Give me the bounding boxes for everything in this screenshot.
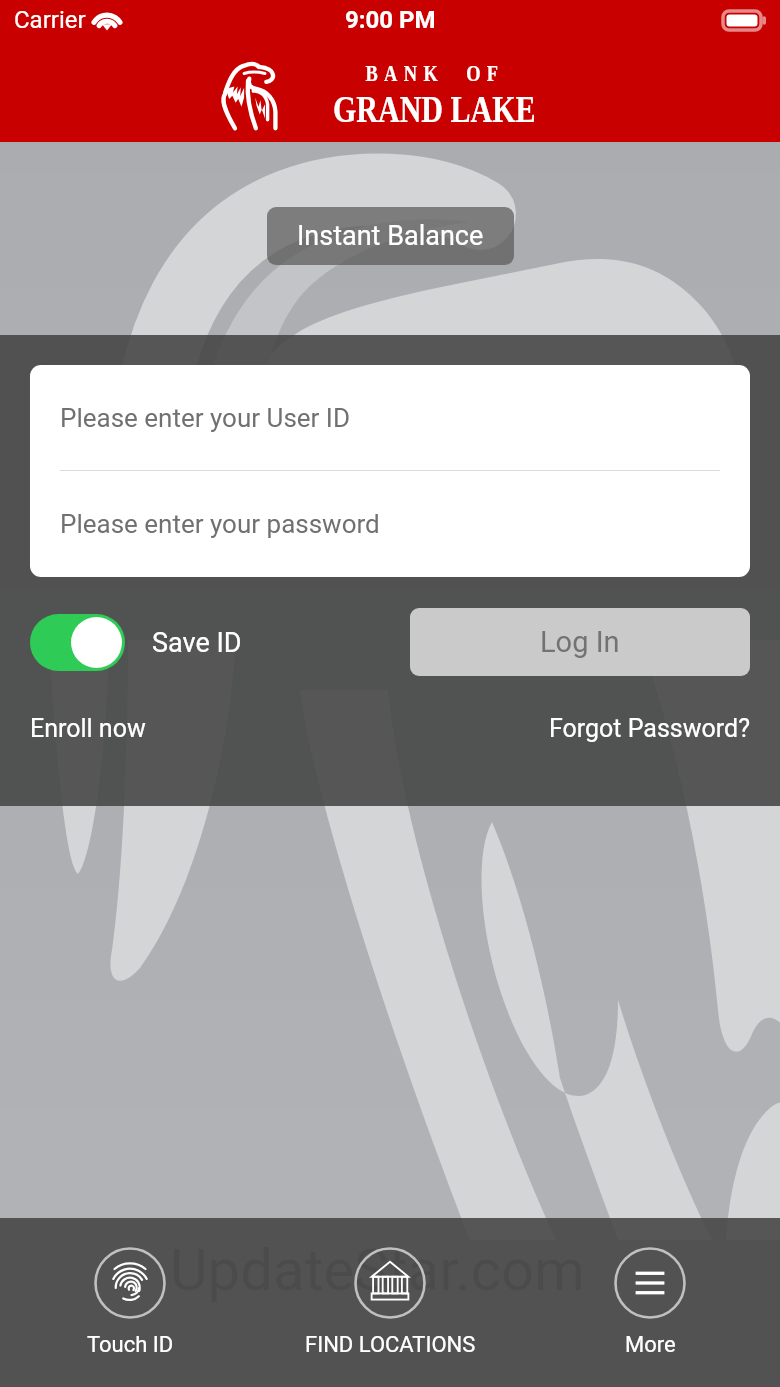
button[interactable]: Log In xyxy=(410,608,750,676)
button[interactable]: Enroll now xyxy=(30,714,146,743)
staticText: Carrier xyxy=(14,6,86,34)
staticText: Forgot Password? xyxy=(549,714,750,743)
staticText: FIND LOCATIONS xyxy=(305,1332,476,1358)
button[interactable]: Please enter your password xyxy=(30,471,750,577)
staticText: More xyxy=(625,1332,676,1358)
button[interactable]: Touch ID xyxy=(0,1218,260,1387)
staticText: Please enter your password xyxy=(60,509,380,539)
button[interactable]: Please enter your User ID xyxy=(30,365,750,470)
button[interactable]: Instant Balance xyxy=(267,207,514,265)
staticText: Please enter your User ID xyxy=(60,403,350,433)
staticText: Log In xyxy=(540,625,620,659)
button[interactable] xyxy=(30,614,125,671)
staticText: Touch ID xyxy=(87,1332,174,1358)
staticText: UpdateStar.com xyxy=(170,1236,585,1304)
staticText: BANK OF xyxy=(365,61,505,86)
staticText: Instant Balance xyxy=(297,220,484,252)
button[interactable]: Forgot Password? xyxy=(549,714,750,743)
button[interactable]: FIND LOCATIONS xyxy=(260,1218,520,1387)
button[interactable]: Save ID xyxy=(30,614,242,671)
staticText: 9:00 PM xyxy=(345,6,436,34)
staticText: Enroll now xyxy=(30,714,146,743)
staticText: Save ID xyxy=(152,627,242,659)
staticText: GRAND LAKE xyxy=(333,88,536,130)
button[interactable]: More xyxy=(520,1218,780,1387)
